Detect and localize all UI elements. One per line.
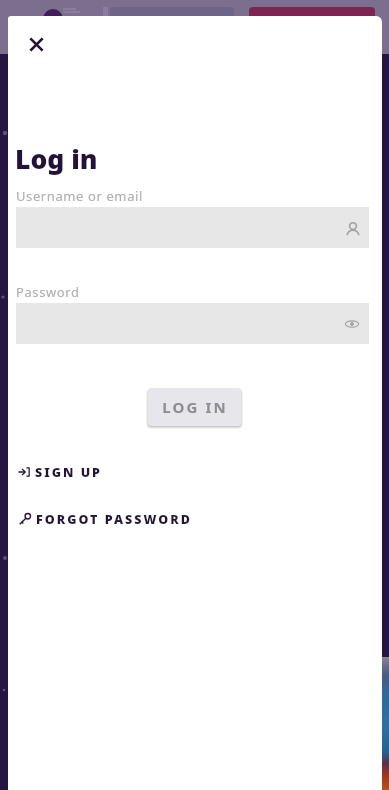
staticText: SIGN UP [35, 464, 103, 481]
button[interactable] [16, 207, 369, 248]
staticText: Log in [15, 141, 98, 177]
button[interactable] [16, 303, 369, 344]
button[interactable]: SIGN UP [18, 459, 103, 485]
staticText: FORGOT PASSWORD [36, 511, 192, 528]
staticText: LOG IN [162, 397, 228, 417]
staticText: Password [16, 283, 80, 301]
staticText: Username or email [16, 187, 143, 205]
button[interactable]: LOG IN [148, 388, 241, 426]
button[interactable]: Close [16, 24, 56, 64]
button[interactable]: FORGOT PASSWORD [18, 506, 192, 532]
